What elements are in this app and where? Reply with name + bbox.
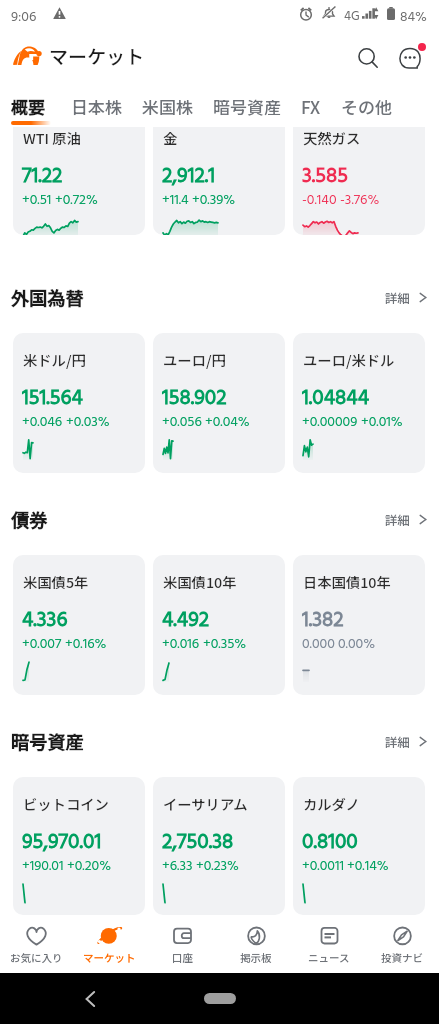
staticText: +6.33 — [162, 855, 193, 877]
staticText: +11.4 — [162, 189, 189, 211]
staticText: 天然ガス — [303, 127, 361, 148]
staticText: 日本国債10年 — [303, 571, 391, 592]
staticText: ビットコイン — [23, 793, 109, 814]
staticText: 暗号資産 — [213, 94, 281, 119]
button[interactable]: 日本株 — [61, 85, 132, 119]
staticText: 概要 — [11, 94, 45, 119]
button[interactable]: ユーロ/米ドル — [293, 333, 425, 473]
button[interactable]: カルダノ — [293, 777, 425, 915]
staticText: ユーロ/米ドル — [303, 349, 395, 370]
staticText: +0.00009 — [302, 411, 358, 433]
other: Home — [204, 993, 236, 1004]
staticText: 詳細 — [385, 510, 411, 528]
staticText: 暗号資産 — [11, 728, 84, 754]
staticText: ユーロ/円 — [163, 349, 226, 370]
button[interactable]: イーサリアム — [153, 777, 285, 915]
staticText: +0.04% — [205, 411, 250, 433]
staticText: 0.00% — [338, 633, 376, 655]
button[interactable]: 金 — [153, 127, 285, 235]
staticText: +0.39% — [192, 189, 236, 211]
staticText: 掲示板 — [240, 950, 272, 965]
staticText: 4.492 — [162, 604, 210, 638]
staticText: 詳細 — [385, 288, 411, 306]
button[interactable]: ビットコイン — [13, 777, 145, 915]
staticText: +190.01 — [22, 855, 64, 877]
button[interactable]: ニュース — [292, 915, 365, 973]
staticText: +0.0011 — [302, 855, 344, 877]
staticText: その他 — [341, 94, 392, 119]
button[interactable]: 投資ナビ — [365, 915, 438, 973]
staticText: 詳細 — [385, 732, 411, 750]
staticText: 債券 — [11, 506, 48, 532]
button[interactable]: 暗号資産 — [203, 85, 291, 119]
staticText: 金 — [163, 127, 178, 148]
staticText: 3.585 — [302, 160, 348, 194]
staticText: 9:06 — [11, 6, 37, 28]
staticText: -0.140 — [302, 189, 337, 211]
button[interactable]: お気に入り — [0, 915, 73, 973]
button[interactable]: 詳細 — [385, 510, 427, 528]
staticText: 2,750.38 — [162, 826, 234, 860]
button[interactable]: 概要 — [1, 85, 61, 125]
staticText: 84% — [400, 6, 427, 28]
staticText: 158.902 — [162, 382, 227, 416]
button[interactable]: 口座 — [146, 915, 219, 973]
staticText: -3.76% — [340, 189, 380, 211]
staticText: +0.007 — [22, 633, 62, 655]
other: Back — [84, 991, 97, 1007]
button[interactable]: Messages — [393, 41, 427, 75]
staticText: 米国株 — [142, 94, 193, 119]
staticText: +0.016 — [162, 633, 200, 655]
staticText: 151.564 — [22, 382, 83, 416]
staticText: 0.8100 — [302, 826, 358, 860]
button[interactable]: 天然ガス — [293, 127, 425, 235]
staticText: 4.336 — [22, 604, 68, 638]
staticText: +0.72% — [55, 189, 98, 211]
button[interactable]: 詳細 — [385, 732, 427, 750]
button[interactable]: 詳細 — [385, 288, 427, 306]
staticText: カルダノ — [303, 793, 360, 814]
staticText: WTI 原油 — [23, 127, 81, 148]
staticText: マーケット — [49, 42, 145, 70]
staticText: 米国債10年 — [163, 571, 237, 592]
button[interactable]: ユーロ/円 — [153, 333, 285, 473]
staticText: +0.046 — [22, 411, 63, 433]
staticText: 口座 — [172, 950, 193, 965]
button[interactable]: 掲示板 — [219, 915, 292, 973]
button[interactable]: Search — [351, 41, 385, 75]
staticText: 日本株 — [71, 94, 122, 119]
button[interactable]: 米ドル/円 — [13, 333, 145, 473]
staticText: 2,912.1 — [162, 160, 216, 194]
button[interactable]: 日本国債10年 — [293, 555, 425, 695]
staticText: +0.16% — [65, 633, 107, 655]
staticText: 米ドル/円 — [23, 349, 86, 370]
staticText: マーケット — [83, 950, 136, 965]
staticText: +0.01% — [361, 411, 403, 433]
button[interactable]: 米国債5年 — [13, 555, 145, 695]
staticText: +0.35% — [203, 633, 247, 655]
staticText: 4G — [344, 6, 360, 27]
staticText: 0.000 — [302, 633, 335, 655]
button[interactable]: その他 — [331, 85, 402, 119]
staticText: +0.20% — [67, 855, 112, 877]
staticText: お気に入り — [10, 950, 63, 965]
staticText: FX — [301, 94, 321, 119]
button[interactable]: マーケット — [73, 915, 146, 973]
staticText: +0.056 — [162, 411, 202, 433]
staticText: 1.04844 — [302, 382, 369, 416]
staticText: +0.23% — [196, 855, 239, 877]
staticText: 71.22 — [22, 160, 63, 194]
staticText: イーサリアム — [163, 793, 248, 814]
staticText: +0.14% — [347, 855, 389, 877]
button[interactable]: FX — [291, 85, 331, 119]
staticText: 95,970.01 — [22, 826, 102, 860]
button[interactable]: 米国株 — [132, 85, 203, 119]
staticText: +0.03% — [66, 411, 110, 433]
staticText: 外国為替 — [11, 284, 84, 310]
button[interactable]: WTI 原油 — [13, 127, 145, 235]
staticText: 1.382 — [302, 604, 344, 638]
staticText: 投資ナビ — [381, 950, 423, 965]
staticText: ニュース — [308, 950, 350, 965]
button[interactable]: 米国債10年 — [153, 555, 285, 695]
staticText: +0.51 — [22, 189, 52, 211]
